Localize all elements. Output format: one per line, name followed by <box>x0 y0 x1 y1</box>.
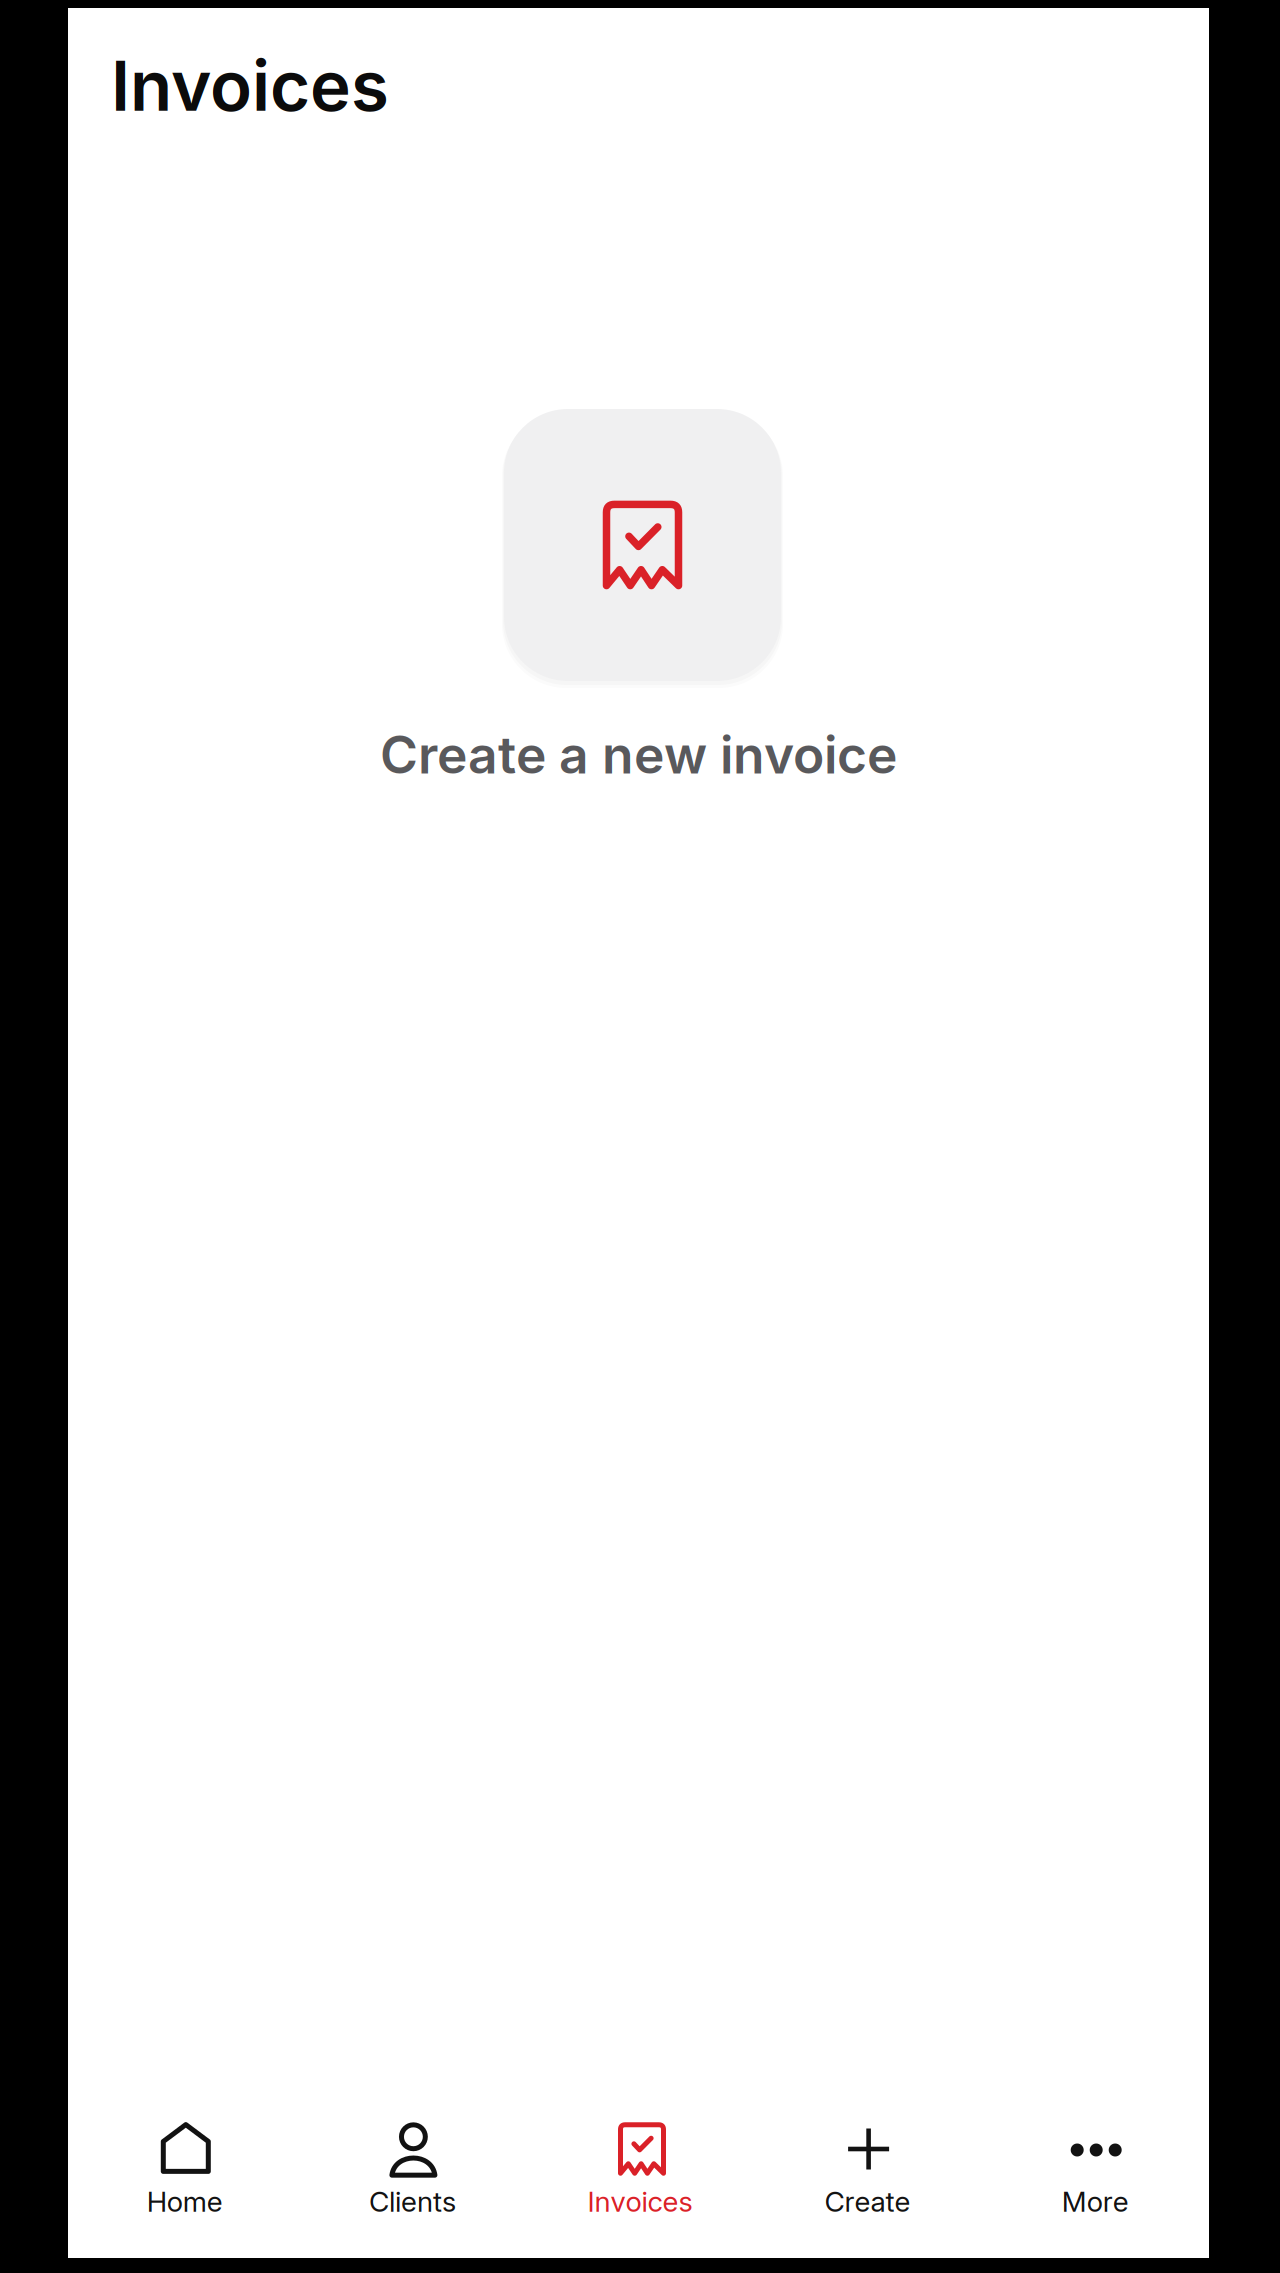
staticText: Home <box>147 2185 223 2218</box>
staticText: Clients <box>369 2185 456 2218</box>
button[interactable]: Create a new invoice <box>380 408 897 786</box>
button[interactable]: Home <box>71 2107 299 2258</box>
staticText: Create <box>825 2185 911 2218</box>
button[interactable]: Invoices <box>526 2107 754 2258</box>
staticText: Invoices <box>111 44 389 127</box>
button[interactable]: More <box>981 2107 1209 2258</box>
staticText: More <box>1062 2185 1129 2218</box>
staticText: Create a new invoice <box>380 723 897 786</box>
button[interactable]: Clients <box>299 2107 526 2258</box>
staticText: Invoices <box>587 2185 692 2218</box>
button[interactable]: Create <box>754 2107 981 2258</box>
